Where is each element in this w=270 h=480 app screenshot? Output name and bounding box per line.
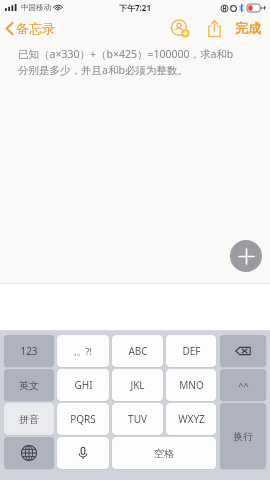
button[interactable]: ^^ [220,369,266,401]
button[interactable]: Delete [220,335,266,367]
staticText: GHI [74,378,93,392]
button[interactable]: ,。?! [57,335,109,367]
button[interactable]: GHI [57,369,109,401]
button[interactable]: TUV [112,403,163,435]
staticText: 下午7:21 [119,2,151,13]
staticText: DEF [182,344,201,358]
button[interactable]: Switch keyboard [4,437,54,469]
button[interactable]: 拼音 [4,403,54,435]
staticText: 中国移动 [21,3,51,12]
staticText: PQRS [70,412,96,426]
button[interactable]: Share [202,16,226,40]
button[interactable]: Add people [168,16,192,40]
button[interactable]: 英文 [4,369,54,401]
button[interactable]: MNO [166,369,216,401]
button[interactable]: 123 [4,335,54,367]
button[interactable]: Voice input [57,437,109,469]
staticText: JKL [130,378,145,392]
staticText: ABC [128,344,148,358]
staticText: 123 [20,344,38,358]
button[interactable]: 完成 [233,17,263,39]
staticText: TUV [128,412,147,426]
staticText: 拼音 [19,413,39,426]
staticText: 空格 [154,447,174,460]
staticText: ^^ [238,379,249,391]
button[interactable]: 换行 [220,403,266,469]
staticText: WXYZ [178,412,205,426]
button[interactable]: DEF [166,335,216,367]
staticText: 换行 [233,430,253,443]
button[interactable]: PQRS [57,403,109,435]
button[interactable]: Add [230,240,262,272]
staticText: MNO [179,378,204,392]
button[interactable]: ABC [112,335,163,367]
staticText: 已知（a×330）+（b×425）=100000，求a和b [18,47,234,61]
staticText: ,。?! [74,345,92,357]
staticText: 分别是多少，并且a和b必须为整数。 [18,63,188,77]
button[interactable]: 空格 [112,437,216,469]
button[interactable]: 备忘录 [0,17,61,39]
staticText: 英文 [19,379,39,392]
button[interactable]: WXYZ [166,403,216,435]
staticText: 备忘录 [16,20,55,36]
button[interactable]: JKL [112,369,163,401]
staticText: 完成 [235,20,261,36]
